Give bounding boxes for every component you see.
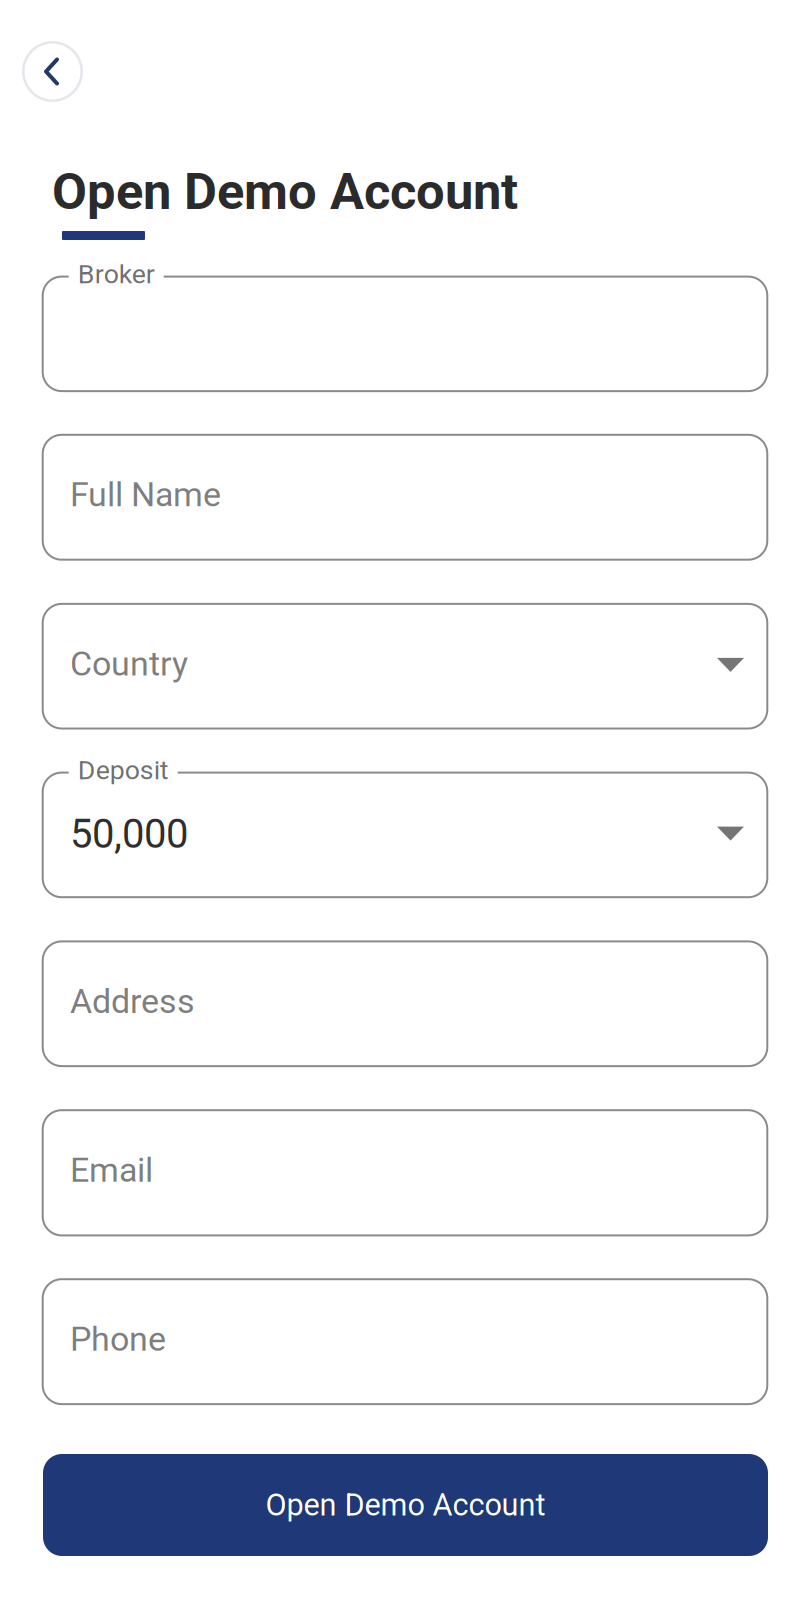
staticText: Broker <box>78 259 155 290</box>
staticText: Address <box>70 981 195 1021</box>
button[interactable]: Open Demo Account <box>43 1454 768 1556</box>
staticText: Country <box>70 644 188 684</box>
staticText: Open Demo Account <box>265 1487 545 1523</box>
button[interactable]: Email <box>0 0 810 1236</box>
button[interactable]: Full Name <box>0 0 810 561</box>
button[interactable]: Country <box>0 0 810 729</box>
button[interactable]: Address <box>0 0 810 1067</box>
staticText: Deposit <box>78 755 169 786</box>
staticText: 50,000 <box>70 811 188 857</box>
button[interactable]: Phone <box>0 0 810 1405</box>
staticText: Email <box>70 1150 153 1190</box>
staticText: Full Name <box>70 475 221 515</box>
button[interactable]: Broker <box>0 0 810 392</box>
button[interactable]: Back <box>22 41 83 102</box>
staticText: Open Demo Account <box>52 162 518 221</box>
staticText: Phone <box>70 1319 166 1359</box>
button[interactable]: Deposit <box>0 0 810 898</box>
